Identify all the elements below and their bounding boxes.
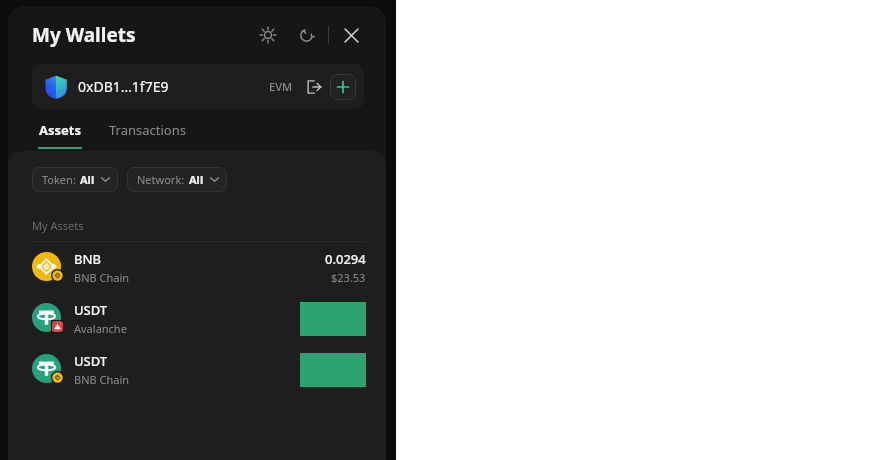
button[interactable]: USDT	[8, 344, 386, 395]
staticText: Token:	[42, 172, 76, 187]
staticText: BNB	[74, 250, 102, 268]
staticText: $23.53	[331, 270, 366, 285]
button[interactable]: Add wallet	[330, 74, 356, 100]
staticText: Network:	[137, 172, 185, 187]
staticText: 0xDB1…1f7E9	[78, 77, 169, 96]
staticText: My Assets	[32, 218, 84, 233]
staticText: USDT	[74, 301, 108, 319]
staticText: Assets	[39, 121, 81, 139]
button[interactable]: 0xDB1…1f7E9	[32, 64, 364, 109]
staticText: EVM	[269, 79, 292, 94]
staticText: Avalanche	[74, 321, 127, 336]
button[interactable]: USDT	[8, 293, 386, 344]
button[interactable]: Assets	[32, 121, 88, 149]
staticText: All	[80, 172, 95, 187]
staticText: BNB Chain	[74, 372, 130, 387]
button[interactable]: Token:	[32, 167, 118, 192]
button[interactable]: Close	[336, 20, 366, 50]
staticText: BNB Chain	[74, 270, 130, 285]
button[interactable]: Transactions	[103, 121, 192, 139]
button[interactable]: Refresh	[291, 20, 321, 50]
staticText: My Wallets	[32, 22, 136, 48]
button[interactable]: Toggle theme	[253, 20, 283, 50]
button[interactable]: Network:	[127, 167, 227, 192]
staticText: USDT	[74, 352, 108, 370]
button[interactable]: Disconnect wallet	[302, 75, 326, 99]
staticText: 0.0294	[325, 250, 366, 268]
staticText: Transactions	[109, 121, 186, 139]
staticText: All	[189, 172, 204, 187]
button[interactable]: BNB	[8, 242, 386, 293]
